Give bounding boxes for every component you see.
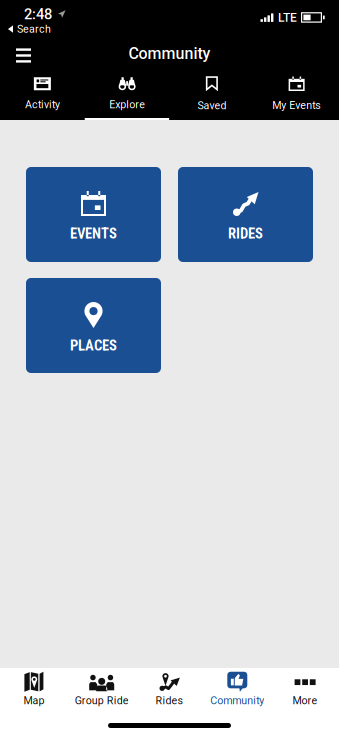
button[interactable]: Saved <box>169 72 254 120</box>
button[interactable]: PLACES <box>26 278 161 373</box>
staticText: LTE <box>278 11 297 25</box>
button[interactable]: Group Ride <box>68 672 136 706</box>
staticText: My Events <box>272 99 321 111</box>
button[interactable]: Community <box>203 672 271 706</box>
button[interactable]: Activity <box>0 72 85 120</box>
staticText: Map <box>23 694 44 707</box>
button[interactable]: Explore <box>85 72 170 120</box>
button[interactable]: Rides <box>136 672 203 706</box>
staticText: Community <box>128 44 210 63</box>
staticText: 2:48 <box>24 6 52 23</box>
button[interactable]: Menu <box>7 39 40 72</box>
staticText: Community <box>210 694 264 707</box>
staticText: Explore <box>109 98 145 111</box>
staticText: Saved <box>197 99 226 112</box>
staticText: EVENTS <box>70 225 117 242</box>
button[interactable]: My Events <box>254 72 339 120</box>
button[interactable]: EVENTS <box>26 167 161 262</box>
button[interactable]: Map <box>0 672 68 706</box>
staticText: RIDES <box>228 225 263 242</box>
staticText: Activity <box>25 98 60 111</box>
staticText: More <box>293 694 318 707</box>
staticText: PLACES <box>70 337 117 354</box>
staticText: Rides <box>155 694 183 707</box>
staticText: Group Ride <box>75 694 129 707</box>
button[interactable]: More <box>271 672 339 706</box>
staticText: Search <box>17 23 51 35</box>
button[interactable]: RIDES <box>178 167 313 262</box>
